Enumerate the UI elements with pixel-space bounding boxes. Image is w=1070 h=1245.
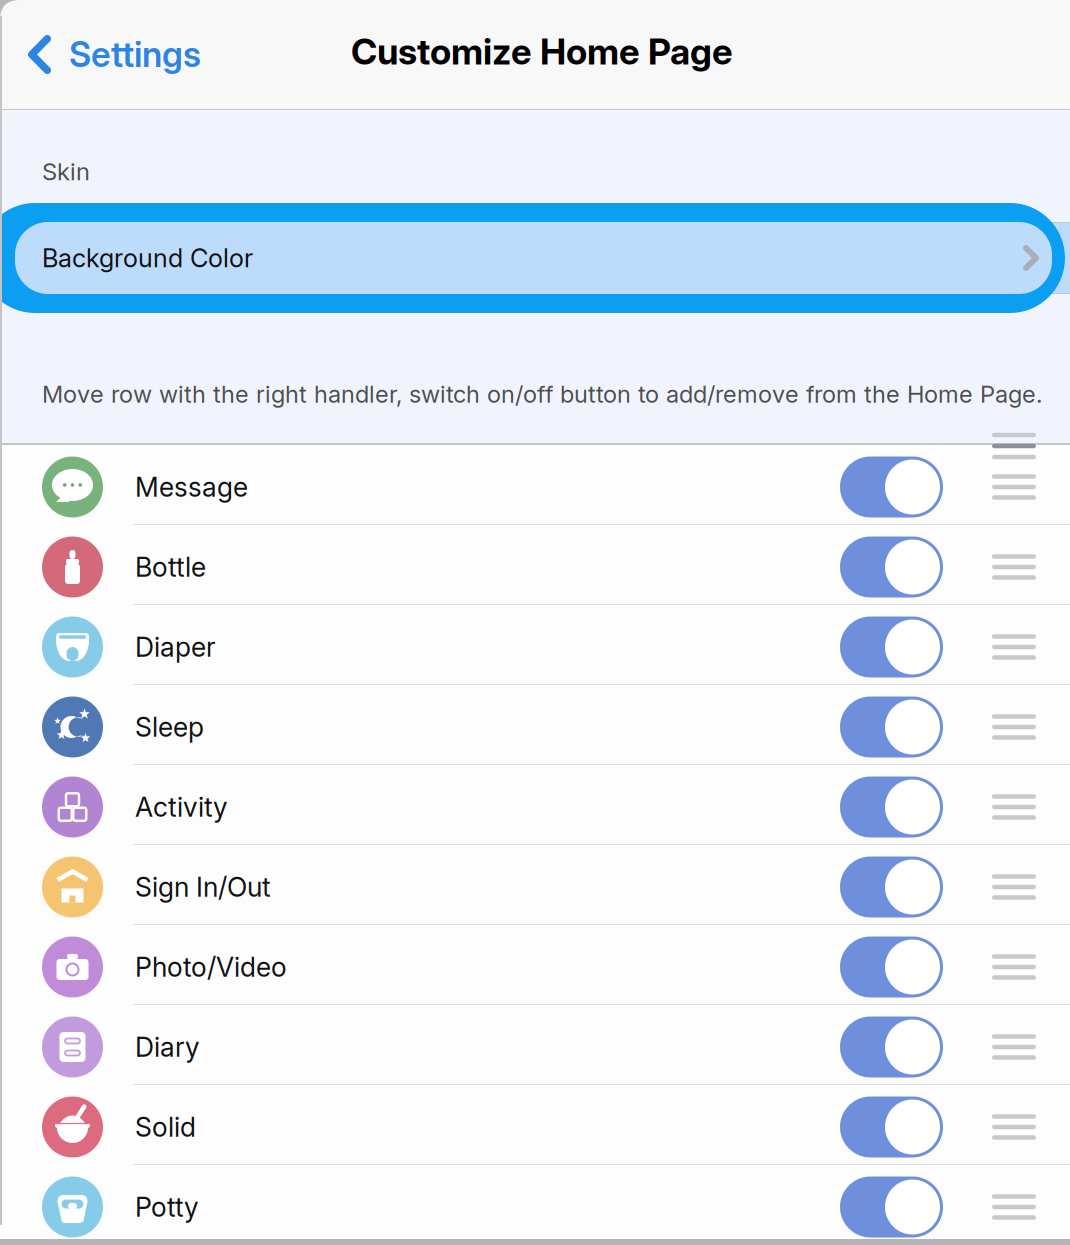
staticText: Skin [42, 157, 90, 186]
staticText: Sign In/Out [135, 871, 271, 903]
button[interactable]: Photo/Video [0, 925, 1070, 1005]
staticText: Photo/Video [135, 951, 287, 983]
button[interactable]: Diaper [0, 605, 1070, 685]
button[interactable]: Potty [0, 1165, 1070, 1245]
button[interactable]: Settings [0, 0, 217, 109]
staticText: Settings [69, 33, 201, 75]
staticText: Move row with the right handler, switch … [42, 380, 1042, 408]
button[interactable]: Diary [0, 1005, 1070, 1085]
staticText: Diaper [135, 631, 216, 663]
staticText: Bottle [135, 551, 206, 583]
staticText: Activity [135, 791, 228, 823]
staticText: Message [135, 471, 248, 503]
button[interactable]: Message [0, 445, 1070, 525]
button[interactable]: Solid [0, 1085, 1070, 1165]
button[interactable]: Bottle [0, 525, 1070, 605]
staticText: Sleep [135, 711, 204, 743]
button[interactable]: Sleep [0, 685, 1070, 765]
staticText: Solid [135, 1111, 196, 1143]
button[interactable]: Activity [0, 765, 1070, 845]
staticText: Customize Home Page [351, 30, 733, 73]
button[interactable]: Sign In/Out [0, 845, 1070, 925]
button[interactable]: Background Color [0, 203, 1070, 313]
staticText: Background Color [42, 243, 253, 273]
staticText: Potty [135, 1191, 199, 1223]
staticText: Diary [135, 1031, 200, 1063]
